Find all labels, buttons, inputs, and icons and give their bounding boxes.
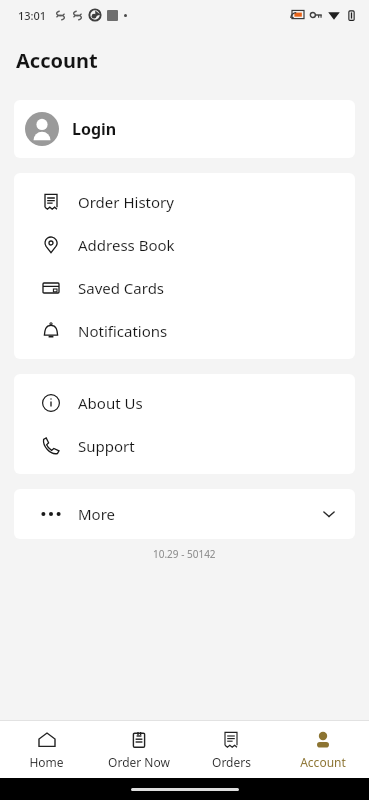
staticText: Address Book [78,235,175,255]
staticText: Login [72,118,117,140]
button[interactable]: Login [14,100,355,158]
button[interactable]: Account [277,721,369,778]
staticText: Account [300,754,346,770]
staticText: Support [78,436,135,456]
staticText: More [78,504,116,524]
staticText: Notifications [78,321,168,341]
button[interactable]: Support [14,424,355,467]
button[interactable]: About Us [14,381,355,424]
staticText: About Us [78,393,143,413]
button[interactable]: Notifications [14,309,355,352]
staticText: Home [29,754,64,770]
button[interactable]: Orders [185,721,277,778]
staticText: Saved Cards [78,278,165,298]
staticText: 13:01 [18,8,47,23]
button[interactable]: Address Book [14,223,355,266]
staticText: Orders [212,754,251,770]
staticText: Account [16,47,98,74]
button[interactable]: Home [0,721,93,778]
button[interactable]: Order Now [93,721,185,778]
staticText: 10.29 - 50142 [153,547,216,561]
button[interactable]: Saved Cards [14,266,355,309]
button[interactable]: More [14,489,355,539]
button[interactable]: Order History [14,180,355,223]
staticText: Order History [78,192,174,212]
staticText: Order Now [108,754,170,770]
